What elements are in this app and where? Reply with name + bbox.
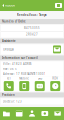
button[interactable]: Agenda <box>13 110 26 117</box>
staticText: B4753355 <box>24 26 40 30</box>
staticText: Numéro d'Ordre <box>2 20 26 23</box>
staticText: Tel <box>7 77 11 80</box>
button[interactable]: Envoyer un e-mail <box>53 45 61 53</box>
button[interactable]: Contacts <box>26 110 38 117</box>
staticText: Fixe: 06 5 <box>3 67 17 71</box>
staticText: Mobile <box>19 77 29 80</box>
staticText: Assistante <box>2 39 16 43</box>
button[interactable]: Photos <box>38 110 51 117</box>
staticText: Docteur: 123 <box>3 100 22 103</box>
staticText: Praticien <box>2 93 15 97</box>
staticText: 2R0427 <box>26 33 38 36</box>
button[interactable]: SMS <box>32 77 47 91</box>
staticText: Ville: 41823 ADRES <box>3 62 31 66</box>
staticText: Rendez-Vous : Tanya <box>17 13 47 17</box>
staticText: Information sur l'accueil <box>2 56 38 60</box>
staticText: SMS <box>38 77 42 80</box>
button[interactable]: RDV <box>47 77 63 91</box>
button[interactable]: Dossiers <box>0 110 13 117</box>
button[interactable]: RETOUR <box>0 0 17 10</box>
button[interactable]: Mobile <box>16 77 32 91</box>
button[interactable]: Messages <box>51 110 64 117</box>
staticText: Adresse: 17 RUE SAINTE 13001 <box>3 72 46 76</box>
staticText: RDV <box>52 77 58 80</box>
staticText: RETOUR <box>5 4 15 7</box>
staticText: ORBELLA <box>3 48 14 51</box>
button[interactable]: Menu <box>53 0 64 10</box>
button[interactable]: Tel <box>1 77 16 91</box>
